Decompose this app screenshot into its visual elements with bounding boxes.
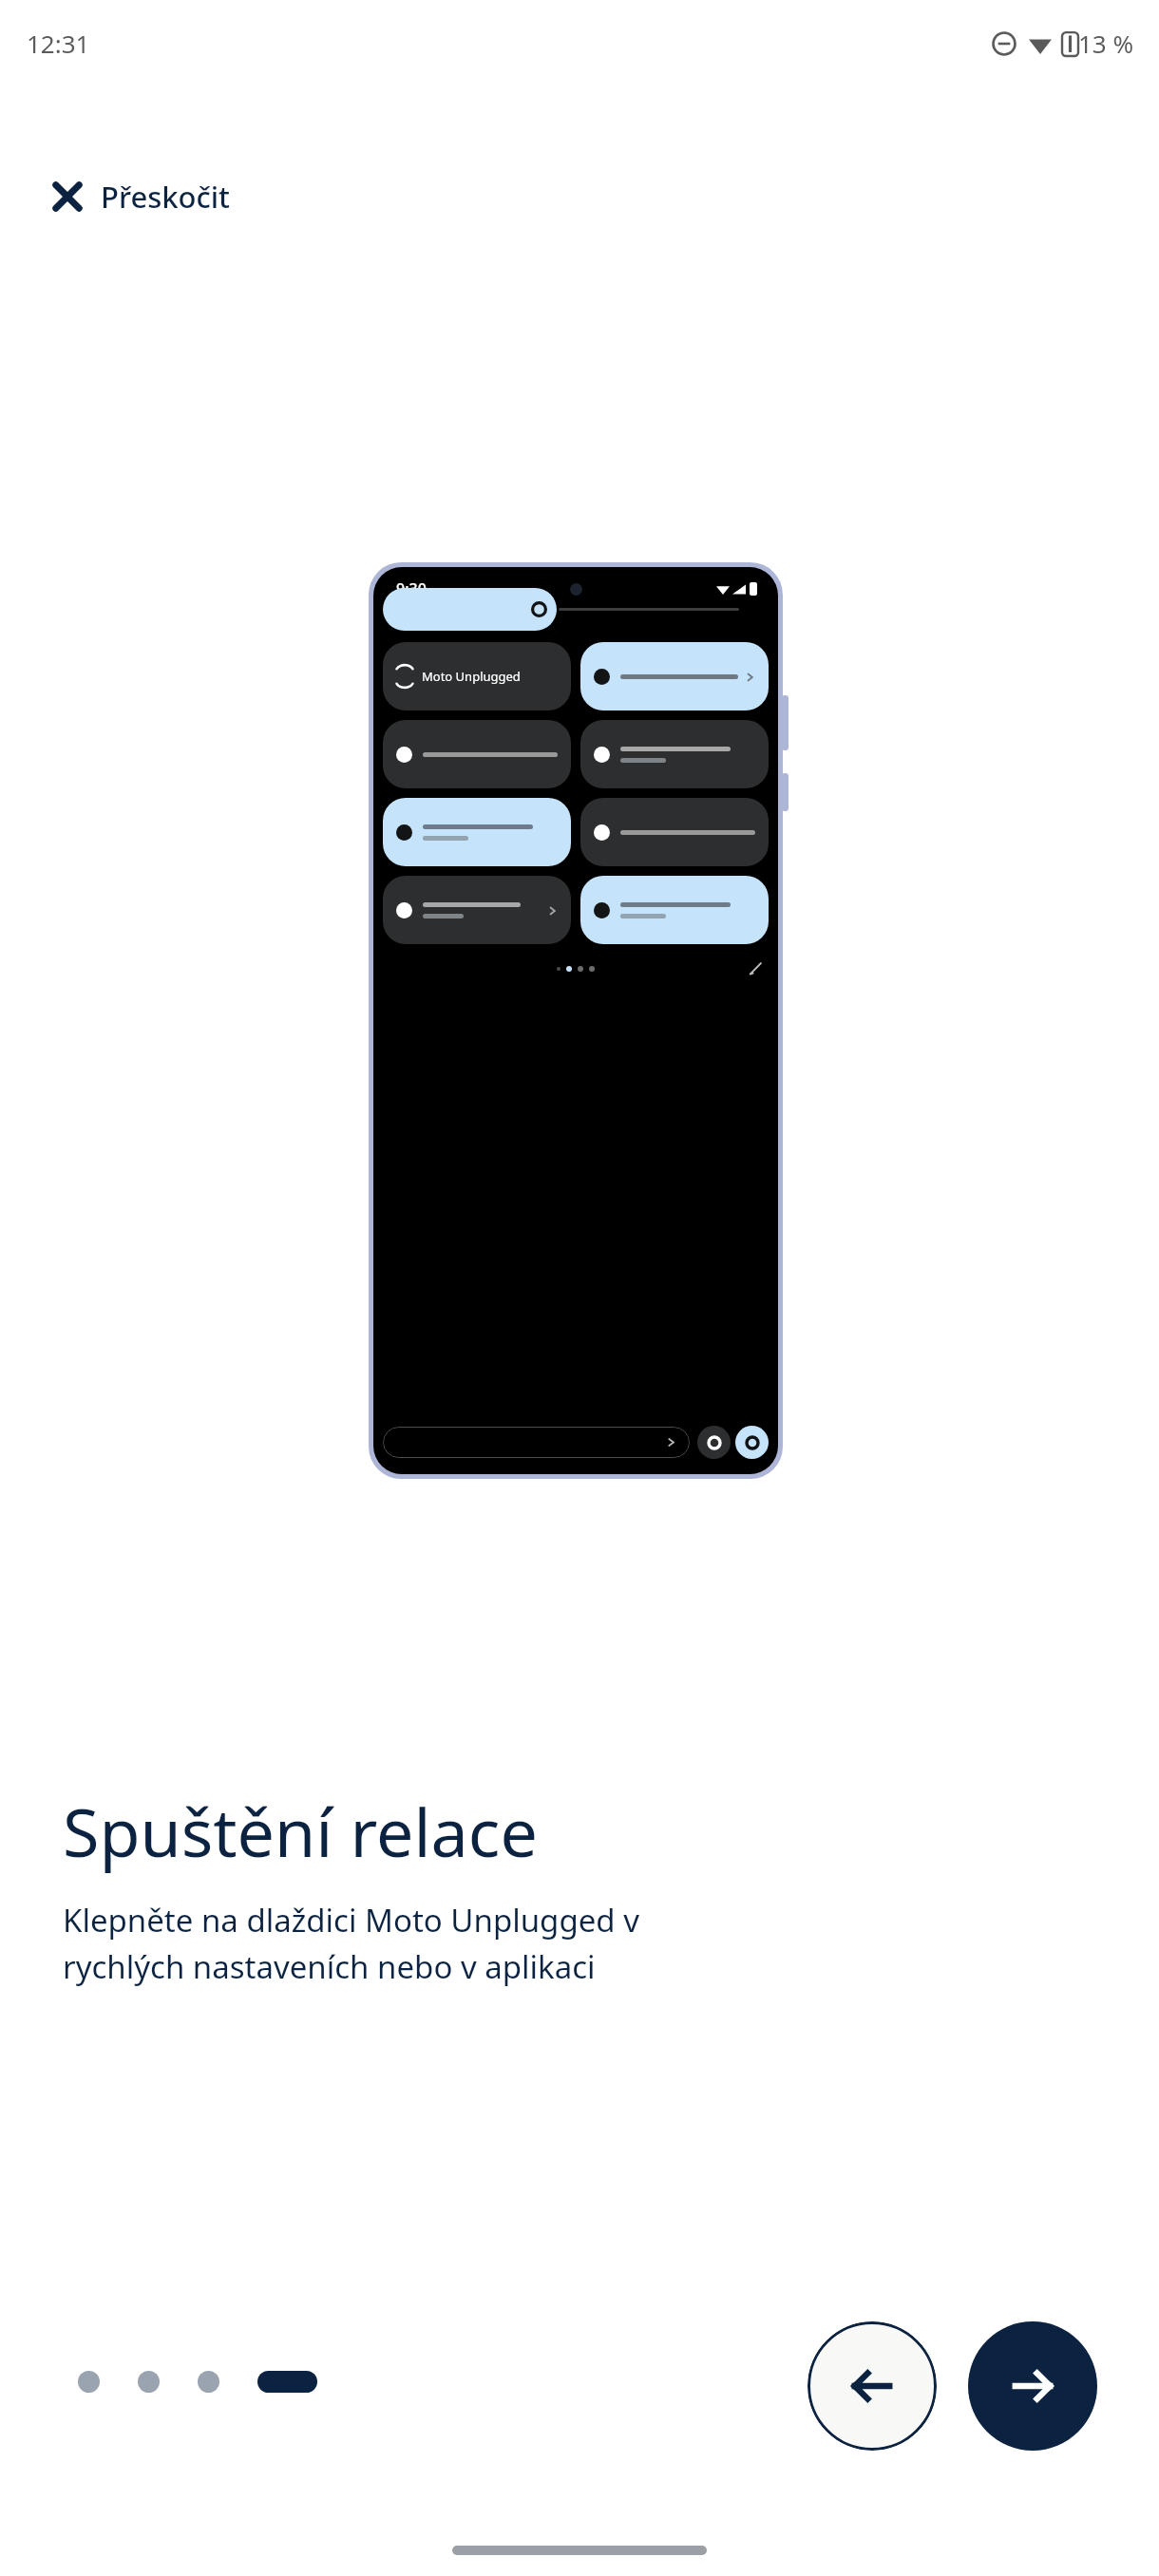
staticText: 9:30	[396, 578, 427, 599]
button[interactable]	[383, 720, 571, 788]
button[interactable]: Další	[968, 2321, 1097, 2451]
button[interactable]: Zpět	[807, 2321, 937, 2451]
staticText: Přeskočit	[101, 177, 230, 217]
button[interactable]	[580, 642, 769, 710]
button[interactable]	[580, 720, 769, 788]
button[interactable]	[580, 798, 769, 866]
staticText: Klepněte na dlaždici Moto Unplugged v ry…	[63, 1899, 639, 1987]
button[interactable]	[383, 876, 571, 944]
staticText: 12:31	[27, 27, 90, 60]
button[interactable]: Moto Unplugged	[383, 642, 571, 710]
staticText: Spuštění relace	[63, 1786, 538, 1876]
staticText: Moto Unplugged	[422, 668, 521, 685]
button[interactable]	[383, 798, 571, 866]
button[interactable]	[580, 876, 769, 944]
staticText: 13 %	[1078, 27, 1134, 60]
button[interactable]: Přeskočit	[38, 169, 243, 224]
